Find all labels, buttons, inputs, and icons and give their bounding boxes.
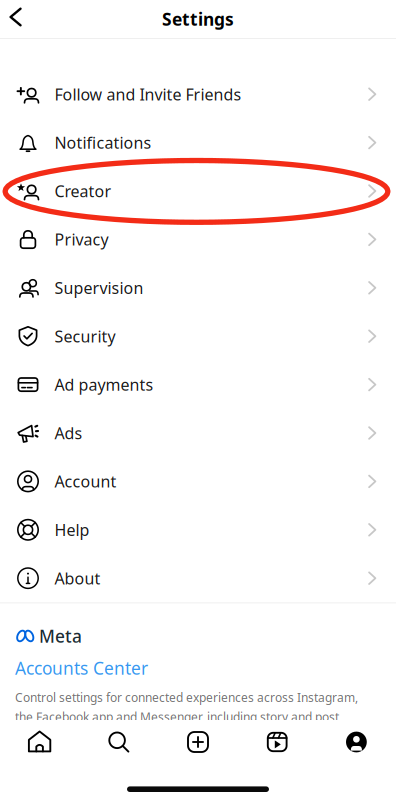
staticText: Creator <box>54 180 111 202</box>
button[interactable]: Account <box>0 457 396 506</box>
button[interactable]: Notifications <box>0 118 396 167</box>
staticText: Control settings for connected experienc… <box>15 689 358 705</box>
button[interactable]: About <box>0 554 396 602</box>
staticText: Supervision <box>54 277 143 298</box>
button[interactable]: Accounts Center <box>15 647 148 679</box>
staticText: Account <box>54 471 116 492</box>
button[interactable]: Profile <box>317 730 396 754</box>
staticText: Ad payments <box>54 374 153 395</box>
button[interactable]: Search <box>79 730 158 754</box>
staticText: Follow and Invite Friends <box>54 84 241 105</box>
button[interactable]: Privacy <box>0 215 396 264</box>
staticText: About <box>54 568 100 589</box>
button[interactable]: Help <box>0 506 396 554</box>
staticText: Accounts Center <box>15 656 148 679</box>
button[interactable]: Reels <box>238 730 317 754</box>
button[interactable]: Supervision <box>0 264 396 312</box>
staticText: Privacy <box>54 229 108 250</box>
button[interactable]: Back <box>0 1 22 37</box>
staticText: Meta <box>39 624 82 647</box>
button[interactable]: Security <box>0 312 396 360</box>
button[interactable]: Home <box>0 730 79 754</box>
staticText: Settings <box>162 7 234 30</box>
button[interactable]: Creator <box>0 167 396 215</box>
staticText: Security <box>54 326 115 347</box>
staticText: Help <box>54 519 89 540</box>
button[interactable]: Follow and Invite Friends <box>0 70 396 118</box>
staticText: Ads <box>54 422 82 444</box>
staticText: the Facebook app and Messenger, includin… <box>15 709 339 725</box>
button[interactable]: Create <box>158 730 238 754</box>
button[interactable]: Ads <box>0 409 396 457</box>
button[interactable]: Ad payments <box>0 360 396 409</box>
staticText: Notifications <box>54 132 151 153</box>
